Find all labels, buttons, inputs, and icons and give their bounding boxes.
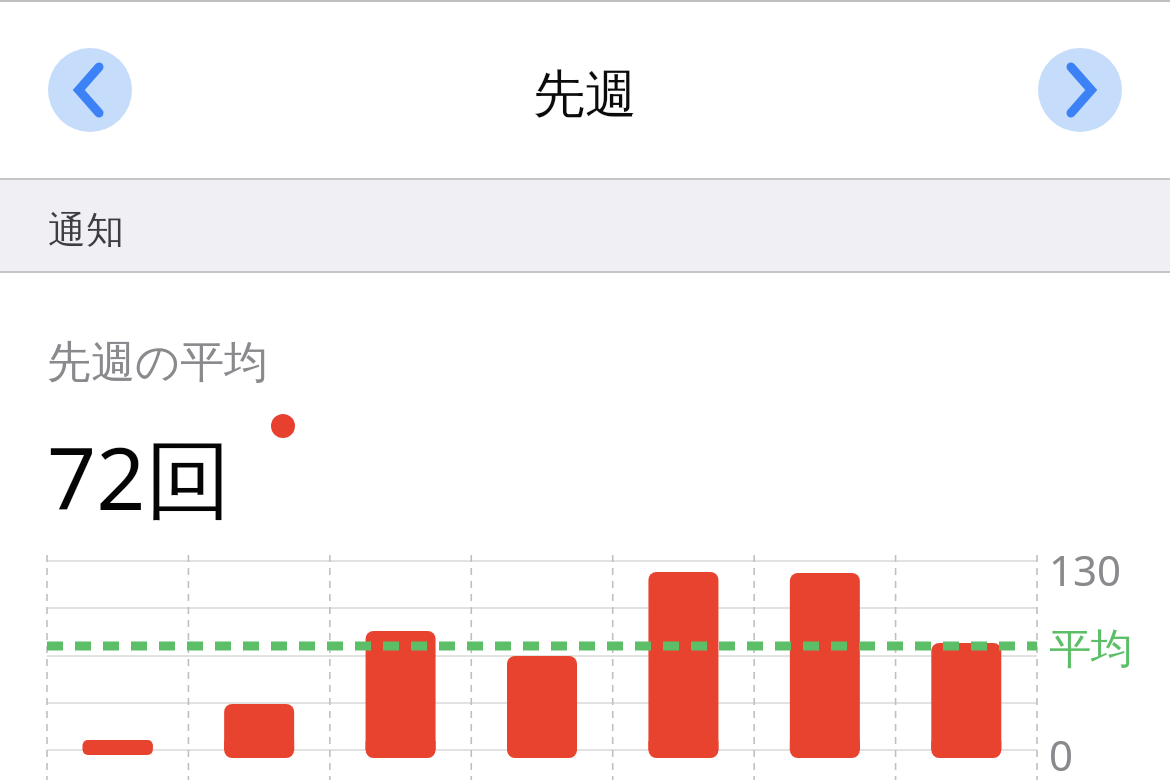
staticText: 平均 xyxy=(1049,623,1133,676)
button[interactable]: Previous week xyxy=(48,48,132,132)
staticText: 130 xyxy=(1049,541,1122,598)
staticText: 0 xyxy=(1049,726,1074,780)
staticText: 72回 xyxy=(47,418,232,535)
button[interactable]: 通知 xyxy=(0,180,1170,272)
staticText: 先週の平均 xyxy=(47,335,269,390)
staticText: 通知 xyxy=(48,206,124,254)
staticText: 先週 xyxy=(0,62,1170,128)
button[interactable]: Next week xyxy=(1038,48,1122,132)
